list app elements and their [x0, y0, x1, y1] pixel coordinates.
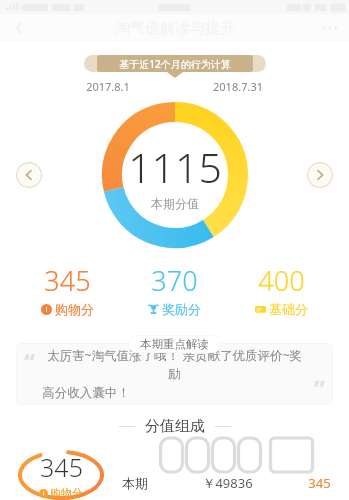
staticText: 基于近12个月的行为计算: [119, 57, 231, 71]
staticText: 400: [258, 262, 305, 299]
staticText: “: [24, 345, 35, 378]
staticText: 淘气值解读与提升: [115, 19, 235, 38]
button[interactable]: 370: [121, 262, 228, 317]
staticText: 1115: [128, 139, 222, 195]
staticText: 基础分: [269, 301, 308, 317]
staticText: 2018.7.31: [213, 79, 263, 94]
button[interactable]: 下一期: [307, 162, 333, 188]
staticText: 本期: [122, 475, 148, 491]
button[interactable]: 345: [18, 450, 331, 500]
staticText: 本期分值: [151, 196, 199, 211]
staticText: 2017.8.1: [86, 79, 130, 94]
staticText: ￥49836: [202, 474, 253, 492]
staticText: 分值组成: [145, 417, 205, 436]
staticText: 购物分: [55, 301, 94, 317]
staticText: 太厉害~淘气值涨了哦！ 亲贡献了优质评价~奖励: [42, 347, 307, 381]
button[interactable]: 上一期: [16, 162, 42, 188]
button[interactable]: 400: [228, 262, 335, 317]
staticText: 345: [308, 474, 331, 492]
staticText: 本期重点解读: [140, 337, 209, 351]
staticText: ”: [314, 372, 325, 405]
staticText: 345: [44, 262, 91, 299]
staticText: 370: [151, 262, 198, 299]
staticText: 奖励分: [162, 301, 201, 317]
staticText: 购物分: [50, 486, 83, 500]
staticText: 345: [40, 450, 83, 484]
staticText: 高分收入囊中！: [42, 385, 130, 401]
button[interactable]: 345: [14, 262, 121, 317]
